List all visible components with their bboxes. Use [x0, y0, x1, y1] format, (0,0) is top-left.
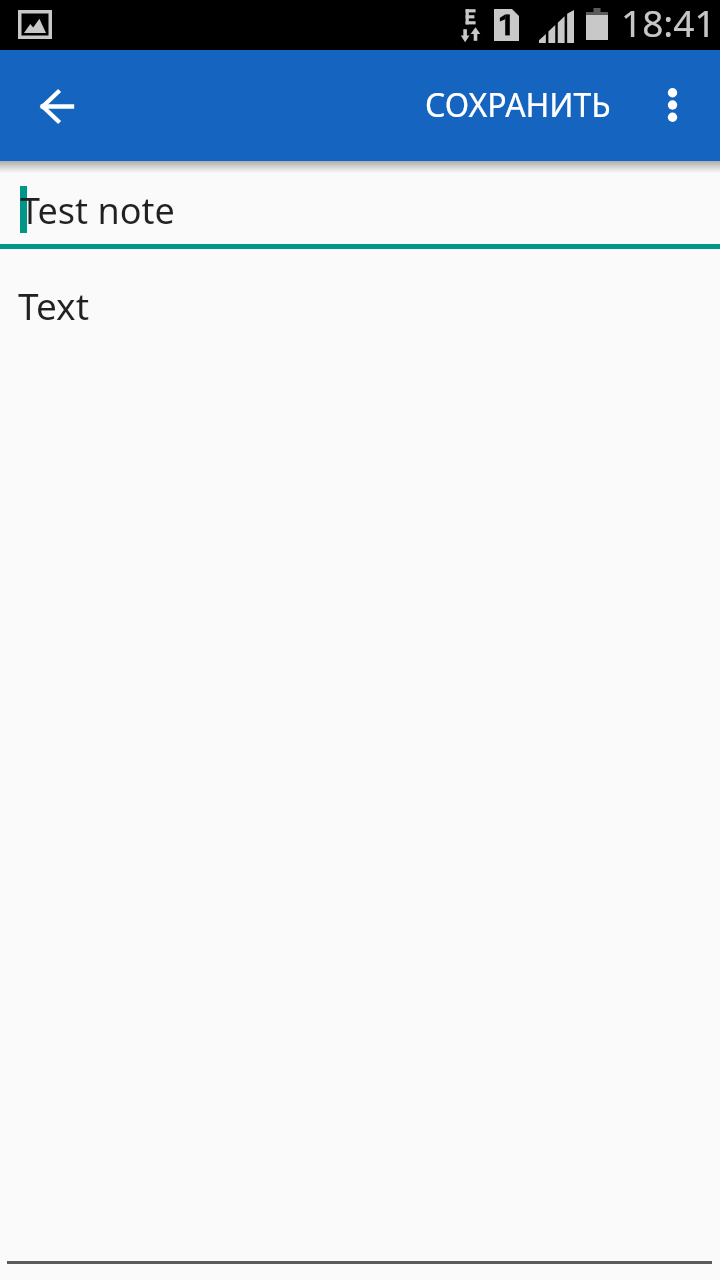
button[interactable]: Back [20, 70, 92, 142]
button[interactable]: Text [0, 255, 720, 1255]
staticText: Test note [20, 186, 175, 235]
staticText: СОХРАНИТЬ [425, 83, 611, 127]
staticText: Text [18, 280, 90, 330]
button[interactable]: More options [641, 74, 703, 136]
button[interactable]: СОХРАНИТЬ [407, 66, 629, 144]
staticText: 18:41 [621, 0, 716, 47]
button[interactable]: Test note [0, 173, 720, 250]
